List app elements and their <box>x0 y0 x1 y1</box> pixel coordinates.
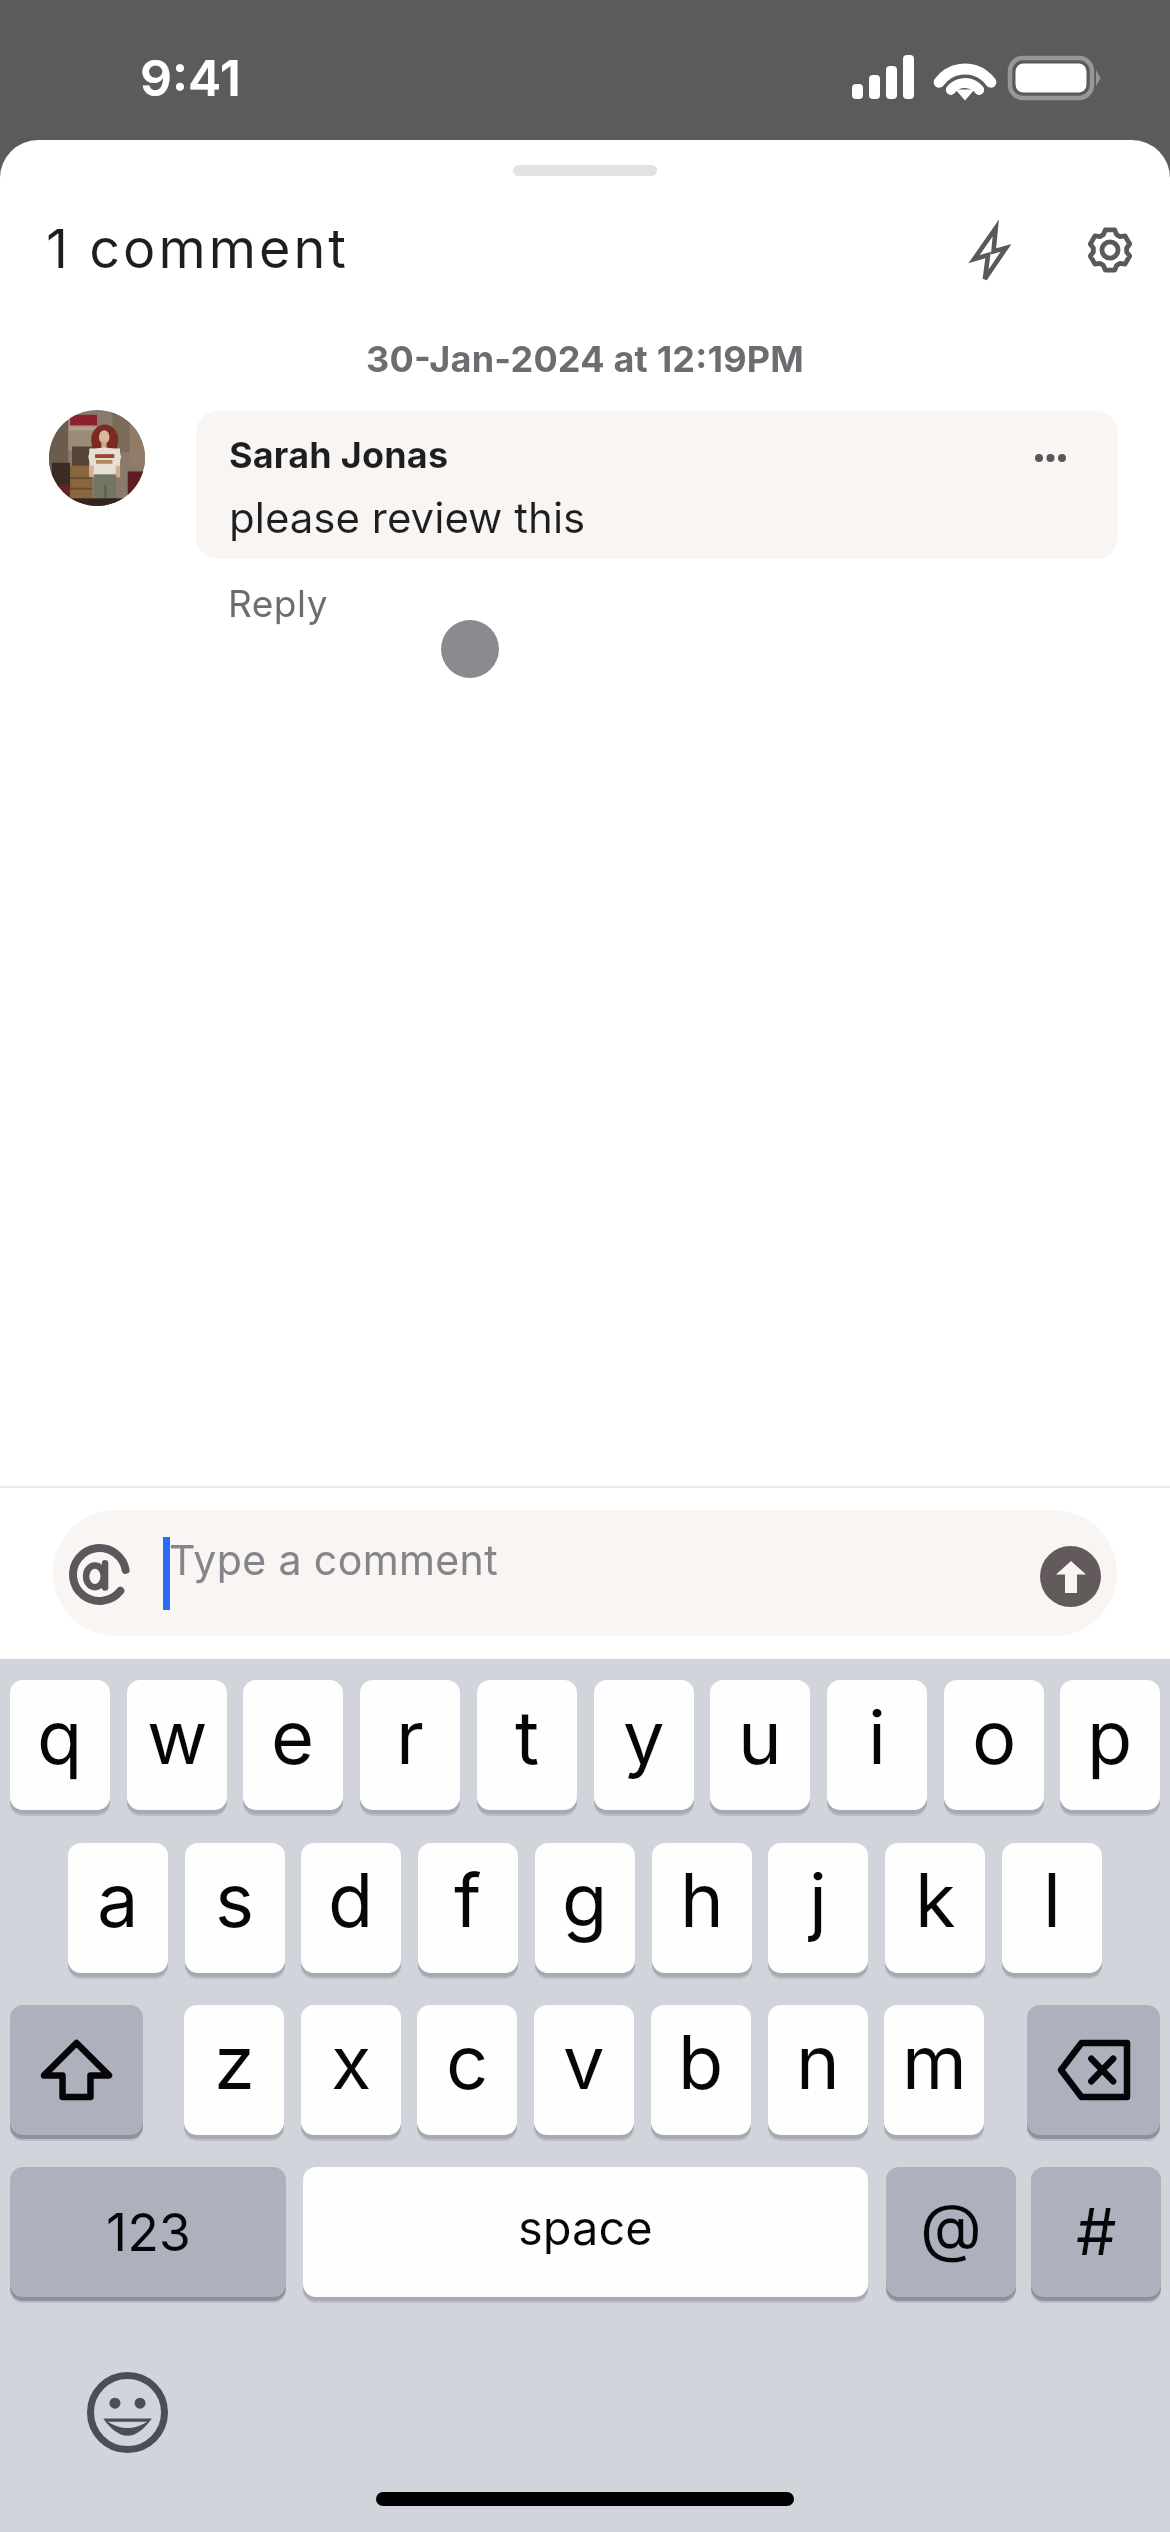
staticText: n <box>796 2017 840 2107</box>
staticText: i <box>868 1692 886 1782</box>
button[interactable]: Sarah Jonas <box>196 411 1118 559</box>
button[interactable]: q <box>10 1680 110 1810</box>
staticText: t <box>515 1692 540 1782</box>
button[interactable]: space <box>303 2167 868 2297</box>
staticText: @ <box>920 2188 982 2265</box>
button[interactable]: y <box>594 1680 694 1810</box>
staticText: Reply <box>228 581 328 626</box>
staticText: g <box>562 1855 608 1945</box>
button[interactable]: r <box>360 1680 460 1810</box>
staticText: r <box>396 1692 424 1782</box>
button[interactable]: c <box>417 2005 517 2135</box>
button[interactable]: w <box>127 1680 227 1810</box>
staticText: please review this <box>229 492 586 543</box>
button[interactable]: Emoji keyboard <box>87 2372 168 2453</box>
staticText: l <box>1043 1855 1061 1945</box>
button[interactable]: Type a comment <box>53 1510 1117 1636</box>
staticText: d <box>328 1855 374 1945</box>
button[interactable]: Shift <box>10 2005 143 2135</box>
staticText: x <box>331 2017 372 2107</box>
button[interactable]: z <box>184 2005 284 2135</box>
staticText: # <box>1076 2193 1117 2270</box>
staticText: c <box>446 2017 489 2107</box>
button[interactable]: f <box>418 1843 518 1973</box>
staticText: 1 comment <box>46 216 350 281</box>
staticText: p <box>1087 1692 1133 1782</box>
button[interactable]: i <box>827 1680 927 1810</box>
button[interactable]: g <box>535 1843 635 1973</box>
button[interactable]: Settings <box>1050 190 1170 310</box>
button[interactable]: k <box>885 1843 985 1973</box>
button[interactable]: t <box>477 1680 577 1810</box>
staticText: w <box>147 1692 208 1782</box>
staticText: h <box>680 1855 724 1945</box>
button[interactable]: Reply <box>216 568 334 638</box>
staticText: q <box>37 1692 83 1782</box>
staticText: o <box>972 1692 1017 1782</box>
staticText: space <box>518 2199 653 2256</box>
staticText: Type a comment <box>169 1535 499 1585</box>
staticText: y <box>623 1692 665 1782</box>
button[interactable]: h <box>652 1843 752 1973</box>
button[interactable]: x <box>301 2005 401 2135</box>
button[interactable]: At sign <box>886 2167 1016 2297</box>
staticText: z <box>214 2017 255 2107</box>
button[interactable]: v <box>534 2005 634 2135</box>
button[interactable]: Numbers <box>10 2167 286 2297</box>
button[interactable]: s <box>185 1843 285 1973</box>
button[interactable]: p <box>1060 1680 1160 1810</box>
button[interactable]: o <box>944 1680 1044 1810</box>
staticText: u <box>738 1692 782 1782</box>
staticText: e <box>271 1692 315 1782</box>
button[interactable]: b <box>651 2005 751 2135</box>
button[interactable]: n <box>768 2005 868 2135</box>
button[interactable]: Backspace <box>1027 2005 1160 2135</box>
staticText: s <box>215 1855 255 1945</box>
staticText: 30-Jan-2024 at 12:19PM <box>0 337 1170 381</box>
staticText: v <box>563 2017 605 2107</box>
staticText: j <box>809 1855 827 1945</box>
staticText: 123 <box>106 2201 191 2264</box>
button[interactable]: j <box>768 1843 868 1973</box>
button[interactable]: Hash <box>1031 2167 1161 2297</box>
staticText: 9:41 <box>140 48 241 108</box>
staticText: b <box>678 2017 724 2107</box>
staticText: f <box>454 1855 482 1945</box>
staticText: Sarah Jonas <box>229 433 449 477</box>
button[interactable]: Smart actions <box>930 193 1050 313</box>
button[interactable]: l <box>1002 1843 1102 1973</box>
button[interactable]: Send <box>1040 1546 1101 1607</box>
button[interactable]: m <box>884 2005 984 2135</box>
staticText: m <box>902 2017 967 2107</box>
staticText: a <box>97 1855 139 1945</box>
staticText: k <box>915 1855 956 1945</box>
button[interactable]: d <box>301 1843 401 1973</box>
button[interactable]: u <box>710 1680 810 1810</box>
button[interactable]: a <box>68 1843 168 1973</box>
button[interactable]: e <box>243 1680 343 1810</box>
button[interactable]: More options <box>1000 411 1100 508</box>
